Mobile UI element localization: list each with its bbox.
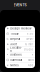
staticText: Invitees bbox=[10, 53, 21, 56]
staticText: Location bbox=[10, 46, 22, 53]
staticText: Work bbox=[27, 58, 33, 62]
button[interactable]: Design Review bbox=[5, 26, 35, 31]
staticText: Today bbox=[10, 32, 18, 35]
staticText: Never bbox=[25, 37, 33, 41]
staticText: Notes bbox=[10, 64, 18, 67]
staticText: Add bbox=[27, 64, 33, 67]
button[interactable]: Notes bbox=[5, 63, 35, 68]
staticText: Design Review bbox=[10, 27, 31, 30]
staticText: 4 bbox=[31, 53, 33, 56]
staticText: Alert bbox=[10, 43, 17, 46]
staticText: 9:30 bbox=[26, 32, 33, 35]
staticText: Calendar bbox=[10, 58, 22, 62]
staticText: EVENTS bbox=[13, 3, 26, 7]
staticText: 15 min bbox=[24, 43, 33, 46]
button[interactable]: Repeat bbox=[5, 36, 35, 42]
staticText: Repeat bbox=[10, 37, 20, 41]
button[interactable]: Today bbox=[5, 31, 35, 36]
button[interactable]: Invitees bbox=[5, 52, 35, 57]
button[interactable]: Location bbox=[5, 47, 35, 52]
button[interactable]: Alert bbox=[5, 42, 35, 47]
staticText: Studio bbox=[23, 48, 33, 51]
button[interactable]: Calendar bbox=[5, 57, 35, 63]
